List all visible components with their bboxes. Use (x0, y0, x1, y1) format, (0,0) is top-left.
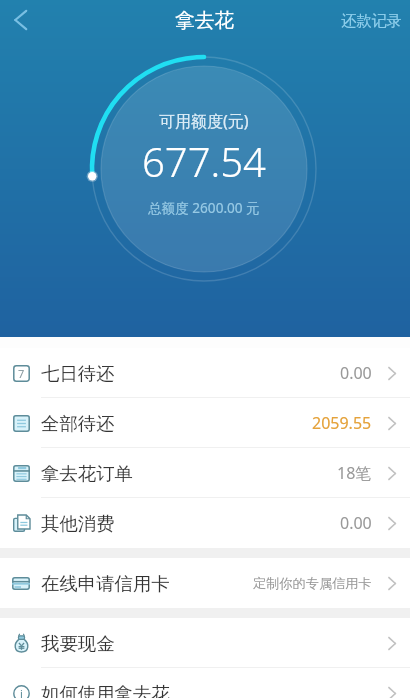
button[interactable]: 全部待还 (0, 398, 410, 448)
staticText: 七日待还 (41, 362, 115, 385)
staticText: 总额度 2600.00 元 (148, 198, 260, 217)
button[interactable]: 在线申请信用卡 (0, 558, 410, 608)
staticText: 定制你的专属信用卡 (253, 575, 372, 592)
staticText: 677.54 (142, 134, 266, 188)
staticText: 2059.55 (312, 412, 372, 434)
staticText: 还款记录 (341, 11, 402, 30)
staticText: 其他消费 (41, 512, 115, 535)
button[interactable]: 还款记录 (327, 1, 410, 40)
staticText: 可用额度(元) (159, 110, 249, 132)
staticText: 0.00 (340, 512, 372, 534)
button[interactable]: i (0, 668, 410, 698)
button[interactable]: Back (0, 0, 40, 40)
staticText: 拿去花订单 (41, 462, 133, 485)
button[interactable]: 拿去花订单 (0, 448, 410, 498)
button[interactable]: 我要现金 (0, 618, 410, 668)
staticText: 全部待还 (41, 412, 115, 435)
staticText: i (20, 686, 23, 698)
staticText: 如何使用拿去花 (41, 682, 170, 698)
button[interactable]: 7 (0, 348, 410, 398)
staticText: 7 (18, 366, 25, 381)
staticText: 拿去花 (175, 8, 235, 33)
button[interactable]: 其他消费 (0, 498, 410, 548)
staticText: 在线申请信用卡 (41, 572, 170, 595)
staticText: 0.00 (340, 362, 372, 384)
staticText: 18笔 (337, 462, 372, 484)
staticText: 我要现金 (41, 632, 115, 655)
